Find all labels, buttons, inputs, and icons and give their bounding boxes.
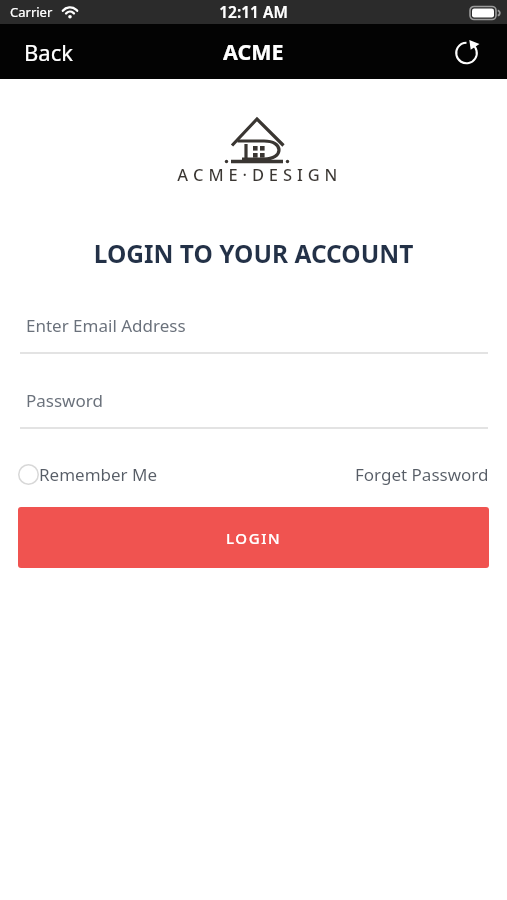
button[interactable]: LOGIN <box>18 507 489 568</box>
button[interactable]: Remember Me <box>18 463 158 486</box>
staticText: Carrier <box>10 3 53 21</box>
button[interactable]: Back <box>16 29 81 75</box>
staticText: Back <box>24 37 73 67</box>
staticText: Remember Me <box>39 463 158 486</box>
staticText: LOGIN <box>226 528 282 548</box>
button[interactable]: Enter Email Address <box>20 305 488 354</box>
staticText: LOGIN TO YOUR ACCOUNT <box>0 237 507 270</box>
button[interactable]: Forget Password <box>355 463 489 486</box>
button[interactable] <box>450 35 484 69</box>
staticText: 12:11 AM <box>0 1 507 22</box>
staticText: Password <box>26 389 103 412</box>
staticText: Enter Email Address <box>26 314 186 337</box>
staticText: A C M E · D E S I G N <box>4 163 507 185</box>
staticText: ACME <box>223 37 284 66</box>
button[interactable]: Password <box>20 380 488 429</box>
